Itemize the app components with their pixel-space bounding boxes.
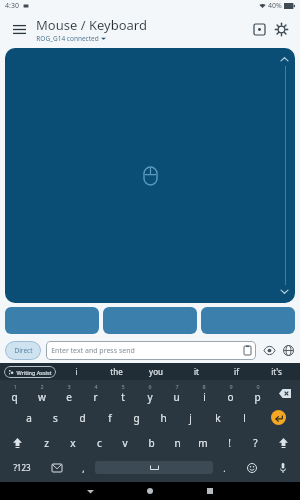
staticText: x — [70, 436, 76, 450]
button[interactable]: you — [136, 363, 176, 380]
staticText: 1 — [13, 383, 17, 390]
button[interactable]: f — [96, 405, 123, 430]
staticText: Mouse / Keyboard — [36, 16, 147, 34]
button[interactable]: . — [213, 458, 236, 477]
staticText: 3 — [67, 383, 71, 390]
button[interactable]: 3 — [55, 381, 82, 405]
button[interactable]: k — [204, 405, 231, 430]
button[interactable]: Shift — [268, 430, 299, 455]
staticText: i — [75, 366, 78, 377]
button[interactable]: Language — [281, 343, 295, 357]
staticText: 0 — [256, 383, 260, 390]
button[interactable]: n — [164, 430, 190, 455]
button[interactable]: the — [96, 363, 136, 380]
button[interactable]: 8 — [190, 381, 217, 405]
staticText: m — [198, 436, 208, 450]
button[interactable]: Emoji — [236, 458, 267, 477]
button[interactable]: j — [177, 405, 204, 430]
staticText: , — [82, 462, 85, 474]
button[interactable]: g — [123, 405, 150, 430]
button[interactable]: Home — [120, 482, 180, 500]
button[interactable]: Settings — [270, 18, 292, 40]
button[interactable]: 0 — [244, 381, 271, 405]
button[interactable]: z — [33, 430, 60, 455]
staticText: 6 — [148, 383, 152, 390]
button[interactable]: h — [150, 405, 177, 430]
button[interactable]: 2 — [28, 381, 55, 405]
staticText: r — [93, 390, 98, 404]
staticText: ! — [228, 436, 231, 450]
staticText: 5 — [121, 383, 125, 390]
button[interactable]: x — [60, 430, 86, 455]
button[interactable]: 6 — [136, 381, 163, 405]
staticText: you — [149, 366, 163, 377]
button[interactable]: l — [231, 405, 258, 430]
staticText: ROG_G14 connected — [36, 34, 99, 43]
button[interactable]: Stickers — [41, 458, 72, 477]
staticText: ? — [253, 436, 258, 450]
button[interactable]: Backspace — [271, 381, 299, 405]
staticText: b — [148, 436, 155, 450]
button[interactable]: i — [56, 363, 96, 380]
button[interactable]: , — [72, 458, 95, 477]
staticText: ?123 — [13, 462, 31, 473]
staticText: w — [38, 390, 46, 404]
button[interactable]: Recent apps — [180, 482, 240, 500]
staticText: u — [173, 390, 180, 404]
button[interactable]: Touchpad — [5, 48, 295, 303]
staticText: 8 — [202, 383, 206, 390]
button[interactable]: if — [216, 363, 256, 380]
staticText: it's — [271, 366, 282, 377]
button[interactable]: c — [86, 430, 112, 455]
button[interactable]: Show text — [262, 343, 276, 357]
button[interactable]: Right click — [201, 307, 295, 334]
button[interactable]: d — [69, 405, 96, 430]
button[interactable]: Middle click — [103, 307, 197, 334]
button[interactable]: v — [112, 430, 138, 455]
button[interactable]: m — [190, 430, 216, 455]
staticText: g — [133, 411, 140, 425]
staticText: Enter text and press send — [51, 346, 135, 356]
button[interactable]: Back — [60, 482, 120, 500]
button[interactable]: Enter text and press send — [46, 341, 256, 360]
staticText: 4 — [94, 383, 98, 390]
staticText: n — [174, 436, 181, 450]
button[interactable]: Voice input — [267, 458, 298, 477]
button[interactable]: Writing Assist — [4, 366, 56, 378]
staticText: v — [122, 436, 128, 450]
staticText: it — [194, 366, 199, 377]
staticText: k — [215, 411, 221, 425]
button[interactable]: Shift — [1, 430, 33, 455]
button[interactable]: Direct — [5, 341, 41, 360]
button[interactable]: 7 — [163, 381, 190, 405]
button[interactable]: Enter — [258, 405, 299, 430]
button[interactable]: ! — [216, 430, 242, 455]
button[interactable]: 4 — [82, 381, 109, 405]
button[interactable]: b — [138, 430, 164, 455]
staticText: h — [160, 411, 167, 425]
staticText: 4:30 — [5, 1, 19, 11]
button[interactable]: 5 — [109, 381, 136, 405]
staticText: 7 — [175, 383, 179, 390]
staticText: 40% — [268, 1, 282, 11]
button[interactable]: 1 — [1, 381, 28, 405]
staticText: e — [66, 390, 72, 404]
staticText: o — [227, 390, 234, 404]
button[interactable]: s — [42, 405, 69, 430]
button[interactable]: Space — [95, 461, 213, 474]
button[interactable]: 9 — [217, 381, 244, 405]
staticText: j — [189, 411, 192, 425]
button[interactable]: it's — [256, 363, 296, 380]
staticText: d — [79, 411, 86, 425]
button[interactable]: Menu — [8, 18, 30, 40]
button[interactable]: ? — [242, 430, 268, 455]
button[interactable]: ?123 — [2, 458, 41, 477]
staticText: Writing Assist — [16, 369, 52, 376]
button[interactable]: a — [15, 405, 42, 430]
staticText: if — [234, 366, 239, 377]
button[interactable]: Left click — [5, 307, 99, 334]
button[interactable]: it — [176, 363, 216, 380]
staticText: f — [108, 411, 112, 425]
staticText: 2 — [40, 383, 44, 390]
button[interactable]: Screen mirror — [248, 18, 270, 40]
